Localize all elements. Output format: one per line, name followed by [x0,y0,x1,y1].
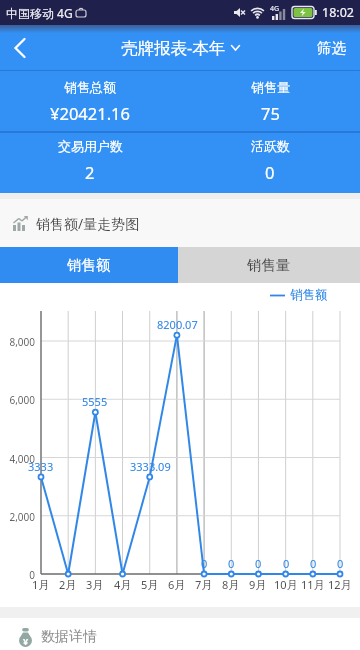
staticText: 0 [29,568,35,582]
staticText: 销售额 [290,287,328,303]
staticText: 数据详情 [41,628,97,646]
staticText: 4月 [114,577,132,592]
staticText: 3月 [86,577,104,592]
staticText: 4G [270,4,280,14]
button[interactable]: ¥ [0,618,360,650]
button[interactable]: 筛选 [303,25,360,70]
staticText: 5月 [141,577,159,592]
staticText: 销售总额 [64,79,116,95]
staticText: 销售量 [251,79,290,95]
staticText: 销售额 [67,256,111,274]
staticText: 7月 [195,577,213,592]
staticText: 9月 [249,577,267,592]
staticText: 0 [310,556,317,571]
staticText: 3333.09 [130,459,171,474]
staticText: 销售量 [247,256,291,274]
staticText: 筛选 [317,39,346,57]
staticText: ¥20421.16 [50,102,130,124]
staticText: 销售额/量走势图 [36,214,140,233]
button[interactable] [0,25,40,70]
button[interactable]: 活跃数 [180,133,360,187]
staticText: 6,000 [9,393,35,407]
staticText: 中国移动 4G [6,5,73,21]
staticText: 0 [337,556,344,571]
staticText: 75 [261,102,280,124]
staticText: 4,000 [9,452,35,466]
button[interactable]: 壳牌报表-本年 [121,36,240,59]
staticText: 11月 [301,577,325,592]
button[interactable]: 销售量 [180,71,360,131]
staticText: 2,000 [9,510,35,524]
staticText: 8200.07 [157,317,198,332]
staticText: 8,000 [9,335,35,349]
staticText: 10月 [274,577,298,592]
staticText: 18:02 [322,4,354,21]
staticText: 0 [228,556,235,571]
staticText: ¥ [23,635,29,647]
button[interactable]: 销售额 [0,247,178,283]
staticText: 6月 [168,577,186,592]
staticText: 0 [201,556,208,571]
staticText: 2月 [59,577,77,592]
staticText: 1月 [32,577,50,592]
button[interactable]: 交易用户数 [0,133,180,187]
staticText: 活跃数 [251,138,290,154]
button[interactable]: 销售总额 [0,71,180,131]
staticText: 3333 [28,459,54,474]
staticText: 交易用户数 [58,138,123,154]
staticText: 12月 [328,577,352,592]
staticText: 0 [265,161,275,183]
staticText: 0 [283,556,290,571]
staticText: 壳牌报表-本年 [121,36,226,59]
staticText: 8月 [222,577,240,592]
staticText: 2 [85,161,95,183]
button[interactable]: 销售量 [178,247,360,283]
staticText: 5555 [82,394,108,409]
staticText: 0 [255,556,262,571]
